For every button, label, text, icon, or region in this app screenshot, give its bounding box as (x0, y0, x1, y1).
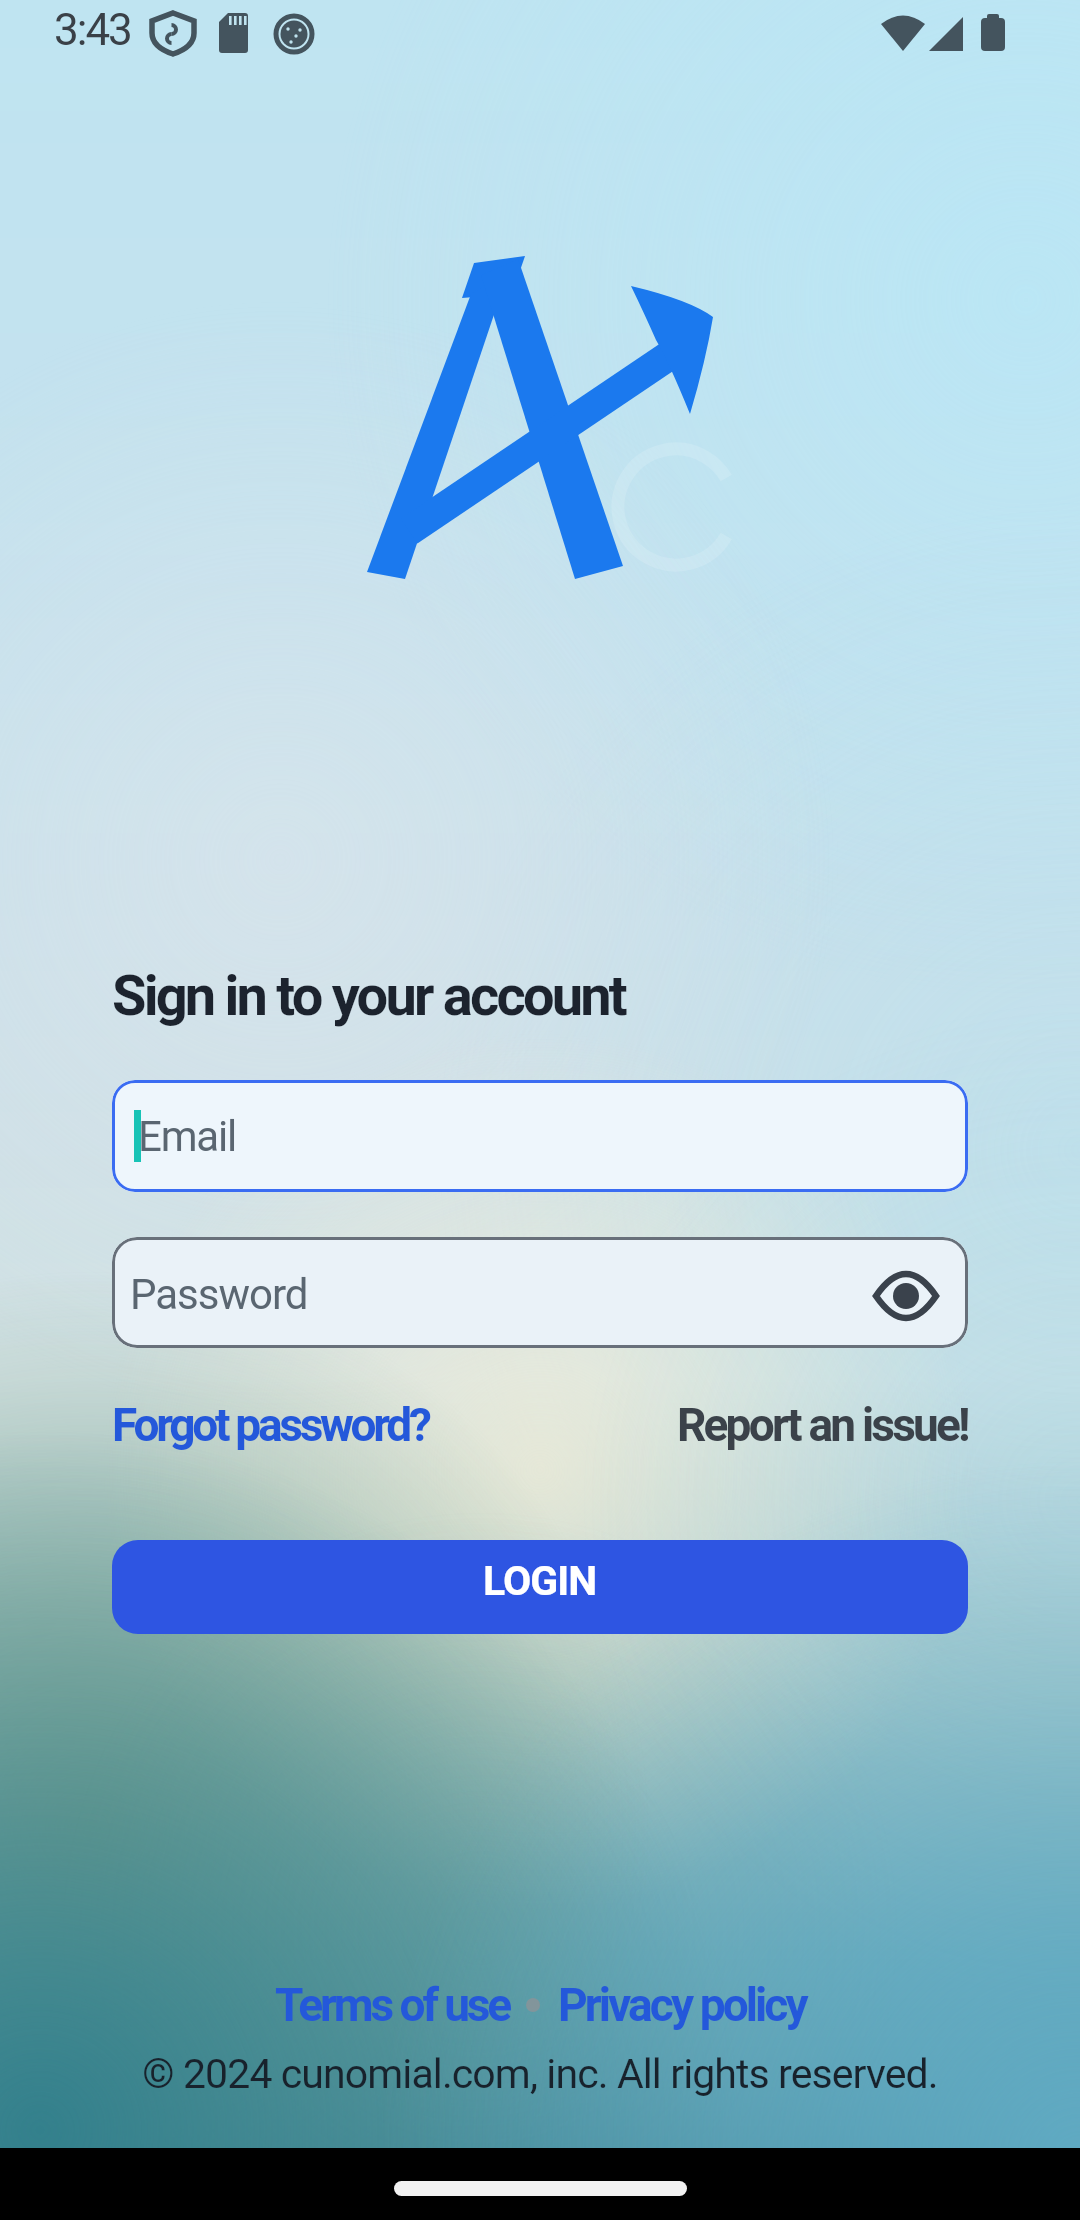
button[interactable] (874, 1274, 938, 1318)
button[interactable]: Privacy policy (558, 1978, 806, 2032)
staticText: Email (138, 1112, 236, 1161)
button[interactable]: Forgot password? (112, 1398, 429, 1452)
button[interactable]: Email (112, 1080, 968, 1192)
button[interactable]: Terms of use (275, 1978, 510, 2032)
staticText: Password (130, 1270, 308, 1319)
staticText: Privacy policy (558, 1978, 806, 2032)
staticText: © 2024 cunomial.com, inc. All rights res… (0, 2050, 1080, 2098)
staticText: Sign in to your account (112, 963, 625, 1029)
staticText: Report an issue! (677, 1398, 968, 1452)
staticText: LOGIN (483, 1557, 597, 1605)
button[interactable]: LOGIN (112, 1540, 968, 1634)
button[interactable]: Report an issue! (677, 1398, 968, 1452)
staticText: Terms of use (275, 1978, 510, 2032)
staticText: Forgot password? (112, 1398, 429, 1452)
staticText: 3:43 (54, 4, 131, 56)
button[interactable]: Password (112, 1237, 968, 1348)
